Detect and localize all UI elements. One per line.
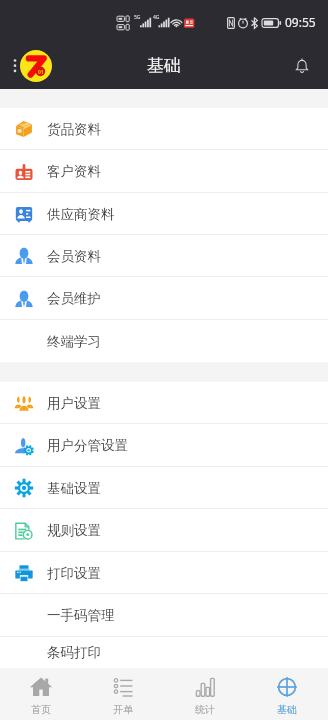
staticText: 会员资料: [47, 248, 101, 265]
staticText: 基础: [277, 703, 297, 716]
button[interactable]: 用户分管设置: [0, 424, 328, 467]
staticText: 条码打印: [47, 644, 101, 661]
button[interactable]: 客户资料: [0, 150, 328, 193]
staticText: 用户分管设置: [47, 437, 128, 454]
button[interactable]: 终端学习: [0, 320, 328, 362]
button[interactable]: 基础: [246, 668, 328, 720]
staticText: 4G: [153, 14, 160, 21]
button[interactable]: 统计: [164, 668, 246, 720]
button[interactable]: 规则设置: [0, 509, 328, 552]
staticText: 统计: [195, 703, 215, 716]
button[interactable]: 会员维护: [0, 277, 328, 320]
staticText: 会员维护: [47, 290, 101, 307]
staticText: 5G: [134, 14, 141, 21]
staticText: 首页: [31, 703, 51, 716]
button[interactable]: 基础设置: [0, 467, 328, 509]
staticText: 终端学习: [47, 333, 101, 350]
staticText: 用户设置: [47, 395, 101, 412]
staticText: 一手码管理: [47, 607, 115, 624]
staticText: 供应商资料: [47, 206, 115, 223]
button[interactable]: 会员资料: [0, 235, 328, 277]
button[interactable]: 货品资料: [0, 108, 328, 150]
button[interactable]: Notifications: [288, 52, 316, 80]
staticText: 规则设置: [47, 522, 101, 539]
staticText: 客户资料: [47, 163, 101, 180]
button[interactable]: Logo: [20, 50, 52, 82]
button[interactable]: 一手码管理: [0, 594, 328, 637]
button[interactable]: 首页: [0, 668, 82, 720]
button[interactable]: 打印设置: [0, 552, 328, 594]
staticText: 货品资料: [47, 121, 101, 138]
staticText: 开单: [113, 703, 133, 716]
button[interactable]: 用户设置: [0, 382, 328, 424]
staticText: 打印设置: [47, 565, 101, 582]
button[interactable]: 开单: [82, 668, 164, 720]
staticText: 基础: [147, 55, 181, 76]
staticText: 09:55: [285, 14, 316, 30]
button[interactable]: 条码打印: [0, 637, 328, 668]
button[interactable]: 供应商资料: [0, 193, 328, 235]
staticText: 01: [38, 69, 44, 76]
staticText: 基础设置: [47, 480, 101, 497]
